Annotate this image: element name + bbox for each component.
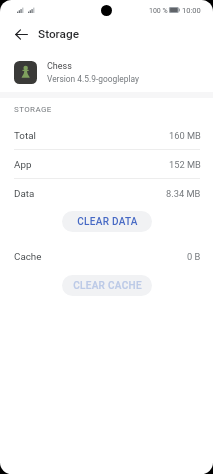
staticText: CLEAR CACHE: [73, 280, 142, 292]
staticText: STORAGE: [14, 105, 52, 114]
button[interactable]: Back: [10, 23, 32, 45]
staticText: Total: [14, 130, 36, 141]
staticText: App: [14, 159, 32, 170]
button[interactable]: Chess: [0, 56, 213, 89]
staticText: CLEAR DATA: [77, 216, 138, 228]
button[interactable]: Total: [0, 121, 213, 150]
staticText: Version 4.5.9-googleplay: [47, 74, 139, 84]
staticText: 10:00: [182, 6, 201, 15]
button[interactable]: Cache: [0, 242, 213, 271]
button[interactable]: CLEAR CACHE: [62, 275, 152, 296]
staticText: 0 B: [187, 251, 201, 262]
button[interactable]: App: [0, 150, 213, 179]
staticText: Chess: [47, 61, 72, 72]
staticText: 100 %: [149, 7, 168, 15]
staticText: Cache: [14, 251, 42, 262]
staticText: Data: [14, 188, 35, 199]
button[interactable]: Data: [0, 179, 213, 208]
staticText: 160 MB: [169, 130, 201, 141]
staticText: 8.34 MB: [166, 188, 201, 199]
button[interactable]: CLEAR DATA: [62, 211, 152, 232]
staticText: 152 MB: [169, 159, 201, 170]
staticText: Storage: [38, 27, 79, 41]
